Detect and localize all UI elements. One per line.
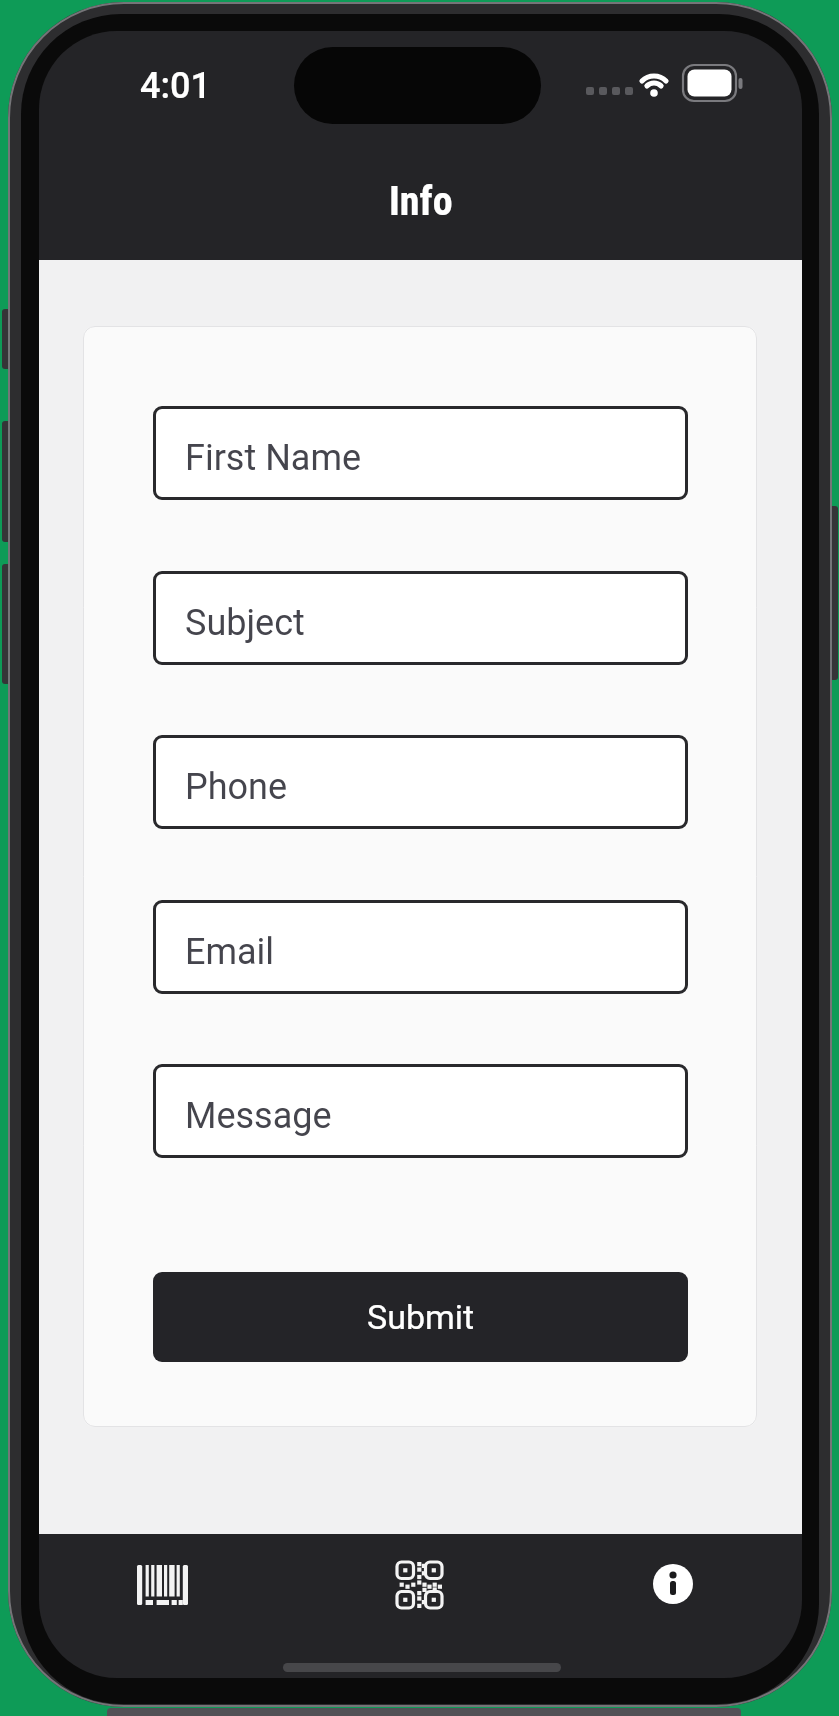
button[interactable]: First Name bbox=[153, 406, 688, 500]
staticText: Phone bbox=[185, 766, 288, 808]
button[interactable]: Subject bbox=[153, 571, 688, 665]
button[interactable] bbox=[117, 1545, 209, 1625]
staticText: 4:01 bbox=[140, 65, 211, 101]
staticText: Submit bbox=[367, 1297, 475, 1337]
staticText: Email bbox=[185, 931, 275, 973]
staticText: Subject bbox=[185, 602, 305, 644]
button[interactable] bbox=[633, 1544, 713, 1624]
staticText: Info bbox=[389, 178, 453, 225]
button[interactable]: Email bbox=[153, 900, 688, 994]
staticText: Message bbox=[185, 1095, 332, 1137]
button[interactable]: Phone bbox=[153, 735, 688, 829]
button[interactable]: Submit bbox=[153, 1272, 688, 1362]
button[interactable]: Message bbox=[153, 1064, 688, 1158]
button[interactable] bbox=[377, 1543, 462, 1627]
staticText: First Name bbox=[185, 437, 362, 479]
